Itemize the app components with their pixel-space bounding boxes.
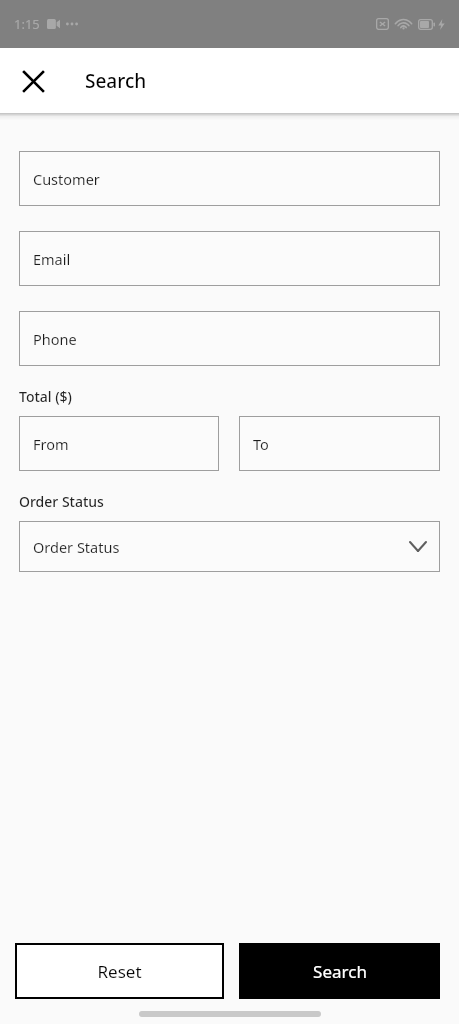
- button[interactable]: Phone: [19, 311, 440, 366]
- button[interactable]: Search: [239, 943, 440, 999]
- staticText: Reset: [97, 960, 142, 983]
- staticText: Search: [85, 68, 147, 94]
- button[interactable]: Email: [19, 231, 440, 286]
- staticText: Total ($): [19, 387, 72, 406]
- button[interactable]: To: [239, 416, 440, 471]
- button[interactable]: Order Status: [19, 521, 440, 572]
- button[interactable]: Close: [11, 59, 55, 103]
- staticText: Email: [33, 249, 71, 269]
- staticText: To: [253, 434, 269, 454]
- button[interactable]: From: [19, 416, 219, 471]
- staticText: Search: [313, 960, 367, 983]
- button[interactable]: Customer: [19, 151, 440, 206]
- staticText: Order Status: [33, 537, 120, 557]
- staticText: 1:15: [14, 15, 40, 33]
- staticText: Phone: [33, 329, 77, 349]
- staticText: Customer: [33, 169, 100, 189]
- button[interactable]: Reset: [15, 943, 224, 999]
- staticText: From: [33, 434, 69, 454]
- staticText: Order Status: [19, 492, 104, 511]
